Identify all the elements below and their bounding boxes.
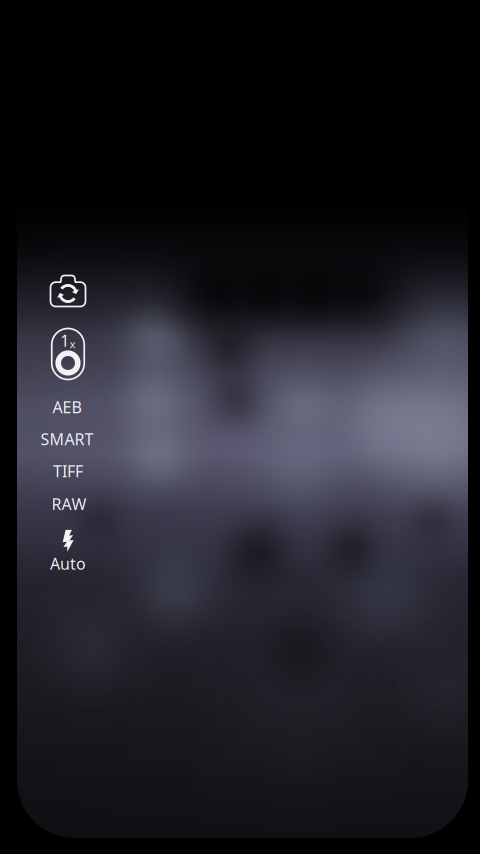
staticText: 1 bbox=[60, 330, 69, 351]
button[interactable]: Zoom 1x bbox=[44, 324, 92, 384]
staticText: RAW bbox=[51, 493, 86, 515]
staticText: x bbox=[70, 337, 76, 351]
button[interactable]: Switch camera bbox=[42, 268, 94, 314]
staticText: AEB bbox=[52, 396, 81, 418]
button[interactable]: SMART bbox=[32, 426, 102, 452]
staticText: Auto bbox=[50, 553, 86, 574]
button[interactable]: RAW bbox=[34, 491, 104, 517]
button[interactable]: AEB bbox=[32, 394, 102, 420]
staticText: SMART bbox=[40, 428, 93, 450]
staticText: TIFF bbox=[53, 460, 83, 482]
button[interactable]: Auto bbox=[40, 528, 96, 576]
button[interactable]: TIFF bbox=[33, 458, 103, 484]
